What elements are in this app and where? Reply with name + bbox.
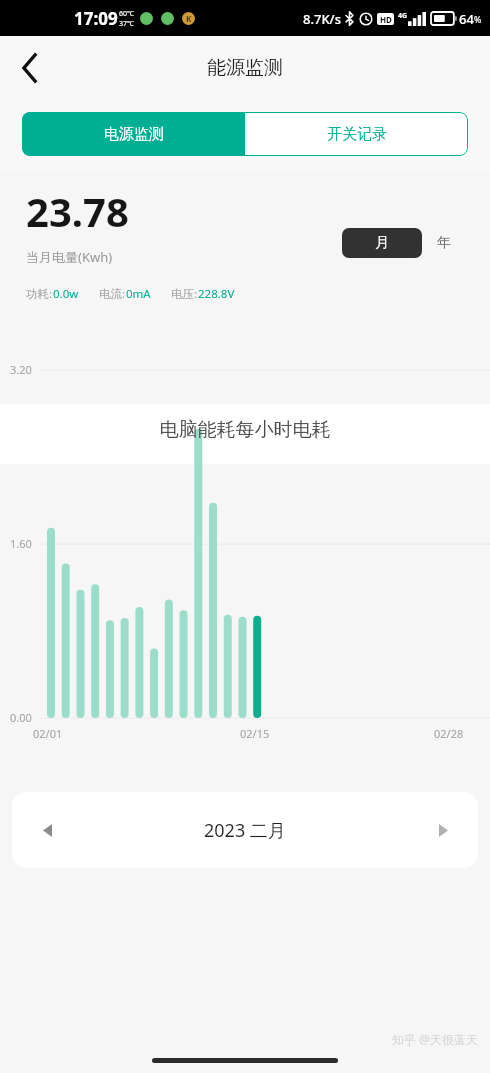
staticText: 2023 二月	[204, 818, 286, 843]
staticText: 3.20	[10, 362, 32, 377]
staticText: 37℃	[119, 19, 134, 29]
staticText: 02/01	[33, 726, 63, 741]
button[interactable]: 年	[422, 228, 466, 258]
staticText: 8.7K/s	[303, 10, 341, 28]
button[interactable]: 开关记录	[245, 112, 468, 156]
staticText: 60℃	[119, 9, 134, 19]
staticText: 0.0w	[53, 286, 79, 302]
button[interactable]: Next month	[408, 792, 478, 868]
staticText: 电压:	[171, 286, 198, 302]
staticText: HD	[380, 14, 392, 25]
staticText: 能源监测	[207, 56, 283, 80]
staticText: 0.00	[10, 710, 32, 725]
button[interactable]: Back	[6, 44, 54, 92]
staticText: 年	[437, 234, 451, 252]
staticText: 02/15	[240, 726, 270, 741]
staticText: 电脑能耗每小时电耗	[0, 418, 490, 442]
staticText: 23.78	[26, 184, 129, 238]
staticText: 0mA	[126, 286, 151, 302]
staticText: 电流:	[99, 286, 126, 302]
button[interactable]: 电源监测	[22, 112, 245, 156]
staticText: 当月电量(Kwh)	[26, 248, 113, 266]
button[interactable]: Previous month	[12, 792, 82, 868]
staticText: 功耗:	[26, 286, 53, 302]
staticText: 02/28	[434, 726, 464, 741]
staticText: 4G	[398, 11, 408, 21]
staticText: 64	[459, 10, 474, 28]
button[interactable]: 月	[342, 228, 422, 258]
staticText: 228.8V	[198, 286, 235, 302]
staticText: 17:09	[74, 7, 118, 30]
staticText: 知乎 @天很蓝天	[392, 1031, 478, 1047]
staticText: K	[186, 13, 192, 24]
staticText: 开关记录	[327, 125, 387, 144]
staticText: 电源监测	[104, 125, 164, 144]
staticText: %	[474, 13, 482, 25]
staticText: 月	[375, 234, 389, 252]
staticText: 1.60	[10, 536, 32, 551]
